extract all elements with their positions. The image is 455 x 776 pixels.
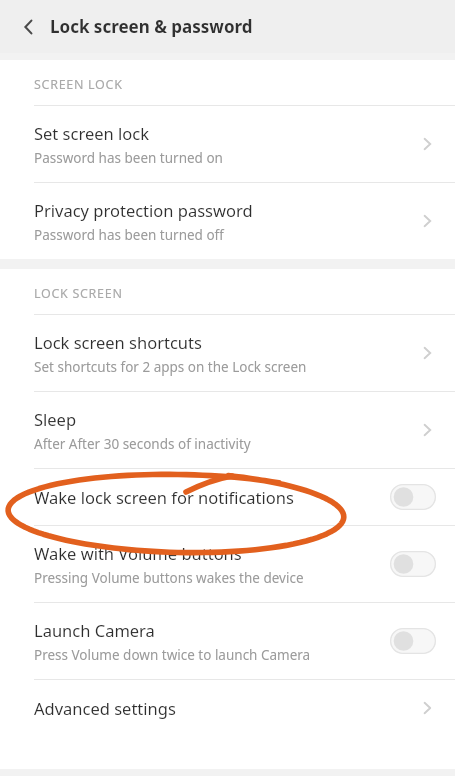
button[interactable]: Launch Camera	[0, 603, 455, 679]
staticText: Pressing Volume buttons wakes the device	[34, 569, 304, 587]
button[interactable]: Toggle	[389, 549, 437, 579]
button[interactable]: Lock screen shortcuts	[0, 315, 455, 391]
button[interactable]: Back	[10, 8, 48, 46]
staticText: After After 30 seconds of inactivity	[34, 435, 251, 453]
staticText: Lock screen shortcuts	[34, 331, 202, 353]
button[interactable]: Toggle	[389, 482, 437, 512]
button[interactable]: Privacy protection password	[0, 183, 455, 259]
staticText: Launch Camera	[34, 619, 155, 641]
staticText: Set shortcuts for 2 apps on the Lock scr…	[34, 358, 307, 376]
button[interactable]: Wake with Volume buttons	[0, 526, 455, 602]
staticText: Wake with Volume buttons	[34, 542, 242, 564]
button[interactable]: Sleep	[0, 392, 455, 468]
button[interactable]: Advanced settings	[0, 680, 455, 736]
staticText: Password has been turned off	[34, 226, 224, 244]
staticText: Sleep	[34, 408, 77, 430]
staticText: Password has been turned on	[34, 149, 223, 167]
staticText: Privacy protection password	[34, 199, 253, 221]
staticText: Press Volume down twice to launch Camera	[34, 646, 311, 664]
staticText: Lock screen & password	[50, 15, 253, 38]
button[interactable]: Wake lock screen for notifications	[0, 469, 455, 525]
staticText: Set screen lock	[34, 122, 149, 144]
button[interactable]: Toggle	[389, 626, 437, 656]
staticText: Wake lock screen for notifications	[34, 486, 294, 508]
button[interactable]: Set screen lock	[0, 106, 455, 182]
staticText: SCREEN LOCK	[34, 76, 123, 93]
staticText: LOCK SCREEN	[34, 285, 123, 302]
staticText: Advanced settings	[34, 697, 417, 719]
